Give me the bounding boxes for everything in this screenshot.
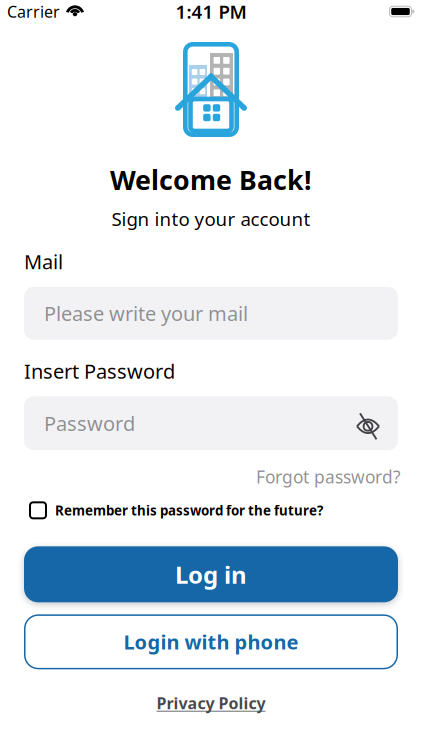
button[interactable]: Login with phone bbox=[24, 614, 398, 669]
staticText: 1:41 PM bbox=[175, 0, 246, 24]
staticText: Carrier bbox=[7, 1, 60, 22]
staticText: Forgot password? bbox=[256, 465, 401, 488]
button[interactable]: Password bbox=[24, 396, 398, 450]
button[interactable]: Please write your mail bbox=[24, 287, 398, 340]
button[interactable]: Log in bbox=[24, 546, 398, 602]
staticText: Remember this password for the future? bbox=[55, 501, 323, 519]
button[interactable]: Remember this password for the future? bbox=[29, 501, 422, 519]
staticText: Insert Password bbox=[24, 358, 175, 384]
staticText: Log in bbox=[175, 558, 247, 590]
staticText: Mail bbox=[24, 248, 63, 275]
staticText: Privacy Policy bbox=[156, 692, 265, 713]
staticText: Please write your mail bbox=[44, 300, 248, 327]
button[interactable]: Privacy Policy bbox=[156, 692, 265, 713]
staticText: Welcome Back! bbox=[110, 162, 312, 197]
staticText: Password bbox=[44, 410, 135, 437]
button[interactable]: Forgot password? bbox=[256, 465, 401, 488]
staticText: Login with phone bbox=[123, 629, 298, 655]
staticText: Sign into your account bbox=[111, 206, 310, 231]
button[interactable]: Show password bbox=[356, 409, 380, 437]
